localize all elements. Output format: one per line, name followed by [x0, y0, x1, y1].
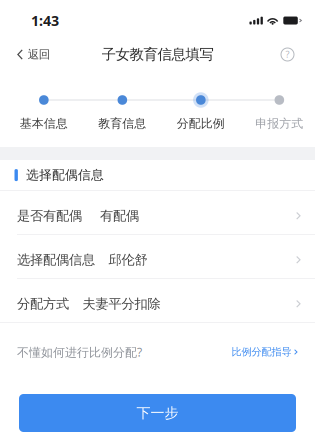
- staticText: 申报方式: [255, 116, 303, 131]
- button[interactable]: 分配方式: [0, 279, 315, 323]
- button[interactable]: 返回: [0, 44, 60, 65]
- staticText: 邱伦舒: [108, 251, 147, 268]
- staticText: 子女教育信息填写: [101, 45, 213, 64]
- button[interactable]: 是否有配偶: [0, 191, 315, 235]
- staticText: 1:43: [31, 11, 59, 30]
- staticText: 是否有配偶: [17, 207, 82, 224]
- staticText: 选择配偶信息: [26, 167, 104, 183]
- staticText: 下一步: [136, 404, 178, 422]
- staticText: 比例分配指导: [231, 346, 291, 358]
- staticText: 选择配偶信息: [17, 251, 95, 268]
- button[interactable]: 帮助: [269, 44, 315, 65]
- staticText: ?: [285, 48, 289, 60]
- staticText: 基本信息: [20, 116, 68, 131]
- staticText: 分配方式: [17, 295, 69, 312]
- button[interactable]: 下一步: [19, 394, 296, 432]
- button[interactable]: 选择配偶信息: [0, 235, 315, 279]
- staticText: 返回: [28, 47, 50, 62]
- staticText: 夫妻平分扣除: [82, 295, 160, 312]
- staticText: 不懂如何进行比例分配?: [17, 344, 142, 360]
- staticText: 有配偶: [100, 207, 139, 224]
- staticText: 教育信息: [98, 116, 146, 131]
- button[interactable]: 比例分配指导: [221, 341, 298, 363]
- staticText: 分配比例: [177, 116, 225, 131]
